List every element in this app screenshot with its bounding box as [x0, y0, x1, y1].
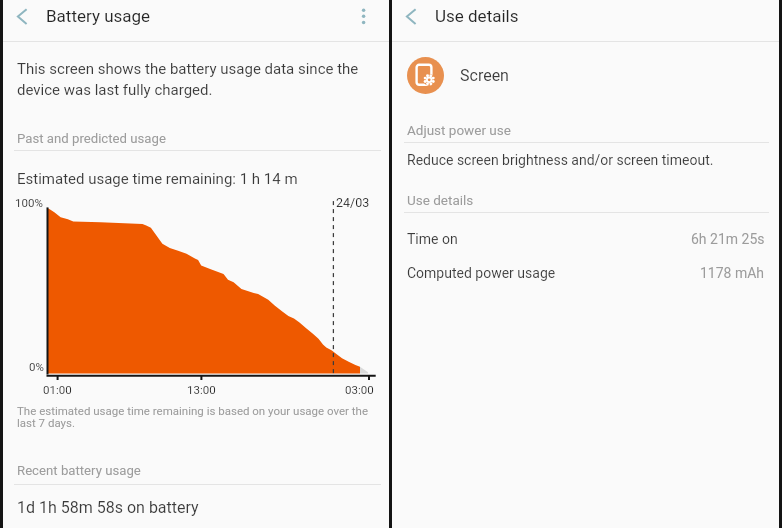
staticText: Screen [460, 66, 509, 85]
staticText: 24/03 [336, 195, 370, 210]
button[interactable]: Screen [392, 48, 779, 102]
staticText: Reduce screen brightness and/or screen t… [407, 152, 714, 168]
staticText: Use details [407, 192, 474, 208]
staticText: This screen shows the battery usage data… [17, 60, 359, 99]
staticText: 13:00 [187, 383, 216, 396]
staticText: Adjust power use [407, 122, 511, 138]
staticText: 0% [29, 360, 44, 373]
button[interactable]: Navigate up [393, 0, 431, 38]
staticText: Computed power usage [407, 265, 556, 281]
staticText: 1178 mAh [700, 265, 765, 281]
staticText: Estimated usage time remaining: 1 h 14 m [17, 170, 298, 188]
staticText: 1d 1h 58m 58s on battery [17, 498, 199, 517]
staticText: 100% [15, 196, 43, 209]
staticText: 03:00 [345, 383, 374, 396]
staticText: 6h 21m 25s [691, 231, 765, 247]
staticText: 01:00 [43, 383, 72, 396]
staticText: Recent battery usage [17, 463, 141, 478]
staticText: Battery usage [46, 6, 151, 26]
staticText: Use details [435, 6, 519, 26]
button[interactable]: Time on [392, 222, 779, 256]
staticText: Time on [407, 231, 458, 247]
staticText: Past and predicted usage [17, 131, 166, 146]
button[interactable]: Navigate up [4, 0, 42, 38]
button[interactable]: Computed power usage [392, 256, 779, 290]
staticText: The estimated usage time remaining is ba… [17, 404, 369, 430]
button[interactable]: More options [349, 0, 383, 34]
